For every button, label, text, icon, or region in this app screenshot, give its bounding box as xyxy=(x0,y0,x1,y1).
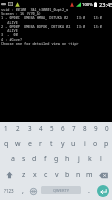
button[interactable]: l xyxy=(95,152,106,166)
button[interactable]: e xyxy=(24,137,35,151)
staticText: ?123 xyxy=(4,188,14,194)
staticText: g xyxy=(54,154,59,164)
button[interactable]: r xyxy=(35,137,46,151)
button[interactable]: k xyxy=(84,152,95,166)
staticText: 9 xyxy=(94,124,98,133)
staticText: z xyxy=(22,170,26,180)
button[interactable]: . xyxy=(83,182,95,200)
button[interactable]: 6 xyxy=(57,122,68,135)
button[interactable]: b xyxy=(62,168,73,182)
staticText: 1 - 0P00C OMEBA HMBA, DETUKA 02 I3:0 13:… xyxy=(1,15,102,20)
staticText: Choose one for detailed view or <tip> xyxy=(1,41,79,46)
staticText: 1 xyxy=(4,124,8,133)
button[interactable]: Enter xyxy=(97,185,109,197)
staticText: 7 xyxy=(72,124,76,133)
button[interactable]: 5 xyxy=(46,122,57,135)
button[interactable]: o xyxy=(90,137,101,151)
staticText: w xyxy=(15,139,21,149)
button[interactable]: t xyxy=(46,137,57,151)
staticText: j xyxy=(78,154,80,164)
staticText: l xyxy=(100,154,102,164)
staticText: 2 - 0P00P OMEBA BOPOK, DETUKA 02 I3:0 13… xyxy=(1,24,102,29)
staticText: 2 xyxy=(16,124,20,133)
button[interactable]: 7 xyxy=(68,122,79,135)
staticText: Screen : 16 (V70_A) xyxy=(1,11,41,16)
button[interactable]: 9 xyxy=(90,122,101,135)
button[interactable]: h xyxy=(62,152,73,166)
staticText: u xyxy=(71,139,76,149)
button[interactable]: ?123 xyxy=(0,182,17,200)
staticText: ssid : 00100 3&1_t30001_0upt2_a xyxy=(1,7,69,12)
button[interactable]: 8 xyxy=(79,122,90,135)
button[interactable]: g xyxy=(51,152,62,166)
staticText: i xyxy=(84,139,86,149)
staticText: t xyxy=(50,139,53,149)
staticText: f xyxy=(44,154,47,164)
button[interactable]: j xyxy=(73,152,84,166)
button[interactable]: d xyxy=(29,152,40,166)
button[interactable]: n xyxy=(73,168,84,182)
staticText: 3 xyxy=(28,124,32,133)
staticText: . xyxy=(88,186,90,196)
staticText: e xyxy=(28,139,32,149)
staticText: 5 xyxy=(50,124,54,133)
button[interactable]: a xyxy=(7,152,18,166)
staticText: 23:45 xyxy=(99,1,112,9)
button[interactable]: i xyxy=(79,137,90,151)
staticText: h xyxy=(65,154,70,164)
staticText: b xyxy=(65,170,70,180)
button[interactable]: c xyxy=(40,168,51,182)
button[interactable]: p xyxy=(101,137,112,151)
staticText: o xyxy=(93,139,98,149)
staticText: v xyxy=(55,170,59,180)
button[interactable]: , xyxy=(17,182,28,200)
staticText: 6 xyxy=(61,124,65,133)
staticText: 100% xyxy=(82,2,93,8)
staticText: r xyxy=(39,139,42,149)
button[interactable]: m xyxy=(84,168,95,182)
staticText: 4 xyxy=(39,124,43,133)
button[interactable]: 4 xyxy=(35,122,46,135)
staticText: ALIVE xyxy=(1,28,18,33)
button[interactable]: v xyxy=(51,168,62,182)
staticText: 4 : #Cove? xyxy=(1,37,22,42)
staticText: q xyxy=(4,139,9,149)
button[interactable]: Backspace xyxy=(95,168,112,182)
button[interactable]: x xyxy=(29,168,40,182)
button[interactable]: s xyxy=(18,152,29,166)
button[interactable]: f xyxy=(40,152,51,166)
button[interactable]: Change keyboard language xyxy=(28,182,38,200)
staticText: n xyxy=(76,170,81,180)
staticText: k xyxy=(88,154,92,164)
button[interactable]: 0 xyxy=(101,122,112,135)
staticText: d xyxy=(32,154,37,164)
staticText: 0 xyxy=(105,124,109,133)
staticText: x xyxy=(33,170,37,180)
staticText: , xyxy=(22,186,24,196)
staticText: 3 - 00 xyxy=(1,32,18,37)
button[interactable]: q xyxy=(0,137,12,151)
button[interactable]: Shift xyxy=(0,168,18,182)
button[interactable]: 2 xyxy=(12,122,24,135)
staticText: ALIVE xyxy=(1,20,18,25)
button[interactable]: u xyxy=(68,137,79,151)
button[interactable]: w xyxy=(12,137,24,151)
staticText: QWERTY xyxy=(53,188,70,193)
button[interactable]: 1 xyxy=(0,122,12,135)
staticText: p xyxy=(104,139,109,149)
staticText: y xyxy=(61,139,65,149)
staticText: a xyxy=(11,154,15,164)
button[interactable]: QWERTY xyxy=(41,186,81,194)
staticText: 8 xyxy=(83,124,87,133)
staticText: s xyxy=(22,154,26,164)
button[interactable]: z xyxy=(18,168,29,182)
staticText: c xyxy=(44,170,48,180)
button[interactable]: 3 xyxy=(24,122,35,135)
button[interactable]: y xyxy=(57,137,68,151)
staticText: m xyxy=(86,170,93,180)
